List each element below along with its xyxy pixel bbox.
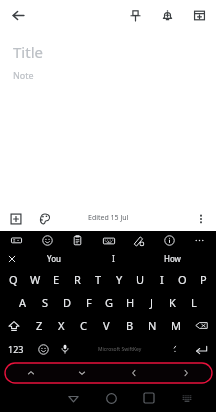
button[interactable]: Shift (0, 314, 28, 337)
button[interactable]: Move left (108, 363, 160, 383)
button[interactable]: N (141, 314, 164, 337)
staticText: I (112, 253, 115, 264)
button[interactable]: Move right (160, 363, 212, 383)
staticText: R (74, 272, 81, 287)
button[interactable]: Close suggestions (0, 250, 24, 267)
button[interactable]: P (193, 268, 214, 291)
staticText: Microsoft SwiftKey (98, 346, 142, 353)
staticText: U (136, 272, 145, 287)
button[interactable]: I (84, 250, 143, 267)
staticText: I (160, 272, 164, 287)
button[interactable]: I (151, 268, 172, 291)
button[interactable]: A (12, 291, 34, 314)
button[interactable]: Move up (5, 363, 56, 383)
staticText: V (103, 318, 110, 333)
button[interactable]: Y (109, 268, 130, 291)
button[interactable]: G (99, 291, 120, 314)
button[interactable]: Home (92, 384, 130, 412)
button[interactable]: Recents (130, 384, 168, 412)
button[interactable]: More (191, 232, 208, 249)
button[interactable]: X (50, 314, 72, 337)
button[interactable]: Q (2, 268, 24, 291)
button[interactable]: J (141, 291, 162, 314)
button[interactable]: You (24, 250, 84, 267)
button[interactable]: Punctuation (164, 337, 186, 361)
staticText: S (42, 295, 49, 310)
button[interactable]: L (183, 291, 204, 314)
button[interactable]: H (120, 291, 141, 314)
button[interactable]: Add (5, 208, 26, 229)
staticText: J (150, 295, 154, 310)
button[interactable]: Backspace (187, 314, 216, 337)
button[interactable]: Move down (56, 363, 108, 383)
button[interactable]: Handwriting (130, 232, 147, 249)
button[interactable]: Toolbar (8, 232, 25, 249)
staticText: Z (36, 318, 43, 333)
button[interactable]: D (56, 291, 78, 314)
staticText: X (58, 318, 65, 333)
staticText: L (191, 295, 197, 310)
button[interactable]: Clipboard (69, 232, 86, 249)
button[interactable]: Add reminder (156, 4, 178, 26)
button[interactable]: Z (28, 314, 50, 337)
button[interactable]: Change colour (34, 208, 55, 229)
staticText: A (19, 295, 27, 310)
staticText: F (86, 295, 92, 310)
staticText: B (126, 318, 134, 333)
staticText: Note (13, 69, 34, 81)
staticText: K (169, 295, 176, 310)
button[interactable]: Move up (5, 363, 212, 383)
button[interactable]: Emoji (39, 232, 56, 249)
button[interactable]: Hide keyboard (168, 384, 206, 412)
button[interactable]: E (46, 268, 67, 291)
button[interactable]: W (24, 268, 46, 291)
button[interactable]: T (88, 268, 109, 291)
staticText: G (105, 295, 114, 310)
button[interactable]: U (130, 268, 151, 291)
staticText: O (178, 272, 187, 287)
staticText: Title (13, 42, 43, 62)
button[interactable]: Space (75, 337, 164, 361)
button[interactable]: Back (5, 2, 31, 28)
button[interactable]: Keyboard modes (100, 232, 117, 249)
button[interactable]: 123 (0, 337, 31, 361)
button[interactable]: Voice input (55, 337, 75, 361)
button[interactable]: Pin (124, 4, 146, 26)
button[interactable]: Back (54, 384, 92, 412)
button[interactable]: M (164, 314, 187, 337)
button[interactable]: F (78, 291, 99, 314)
staticText: Q (9, 272, 18, 287)
button[interactable]: B (118, 314, 141, 337)
staticText: W (30, 272, 41, 287)
button[interactable]: K (162, 291, 183, 314)
button[interactable]: S (34, 291, 56, 314)
button[interactable]: Emoji (31, 337, 55, 361)
staticText: N (148, 318, 157, 333)
button[interactable]: O (172, 268, 193, 291)
button[interactable]: C (72, 314, 95, 337)
staticText: P (200, 272, 207, 287)
button[interactable]: Info (161, 232, 178, 249)
staticText: 123 (8, 343, 24, 355)
staticText: T (95, 272, 102, 287)
button[interactable]: How (143, 250, 202, 267)
staticText: H (126, 295, 135, 310)
staticText: E (53, 272, 60, 287)
button[interactable]: Enter (186, 337, 216, 361)
staticText: Edited 15 Jul (88, 213, 129, 223)
staticText: How (164, 253, 181, 264)
staticText: M (171, 318, 181, 333)
staticText: Y (116, 272, 123, 287)
staticText: C (80, 318, 87, 333)
button[interactable]: More options (190, 208, 211, 229)
staticText: You (47, 253, 61, 264)
button[interactable]: V (95, 314, 118, 337)
button[interactable]: R (67, 268, 88, 291)
staticText: D (63, 295, 72, 310)
button[interactable]: Archive (188, 4, 210, 26)
